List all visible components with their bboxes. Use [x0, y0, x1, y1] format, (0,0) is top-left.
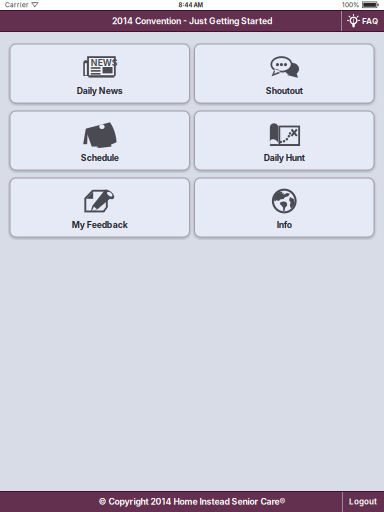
button[interactable]: Daily Hunt [194, 111, 374, 170]
staticText: Daily Hunt [264, 152, 305, 163]
staticText: Logout [349, 497, 377, 506]
staticText: NEWS [91, 58, 118, 68]
staticText: FAQ [362, 16, 378, 26]
button[interactable]: My Feedback [10, 178, 189, 237]
staticText: Daily News [77, 85, 123, 96]
button[interactable]: Schedule [10, 111, 189, 170]
staticText: Carrier [5, 1, 28, 9]
button[interactable]: Info [194, 178, 374, 237]
staticText: 2014 Convention - Just Getting Started [112, 16, 272, 26]
staticText: Info [277, 219, 292, 230]
staticText: Schedule [81, 152, 119, 163]
staticText: Shoutout [266, 85, 303, 96]
button[interactable]: Shoutout [194, 44, 374, 103]
staticText: My Feedback [72, 219, 128, 230]
staticText: 8:44 AM [178, 1, 202, 9]
button[interactable]: Logout [342, 491, 384, 512]
button[interactable]: NEWS [10, 44, 189, 103]
staticText: © Copyright 2014 Home Instead Senior Car… [98, 496, 285, 507]
staticText: 100% [342, 1, 359, 9]
button[interactable]: FAQ [341, 10, 384, 32]
